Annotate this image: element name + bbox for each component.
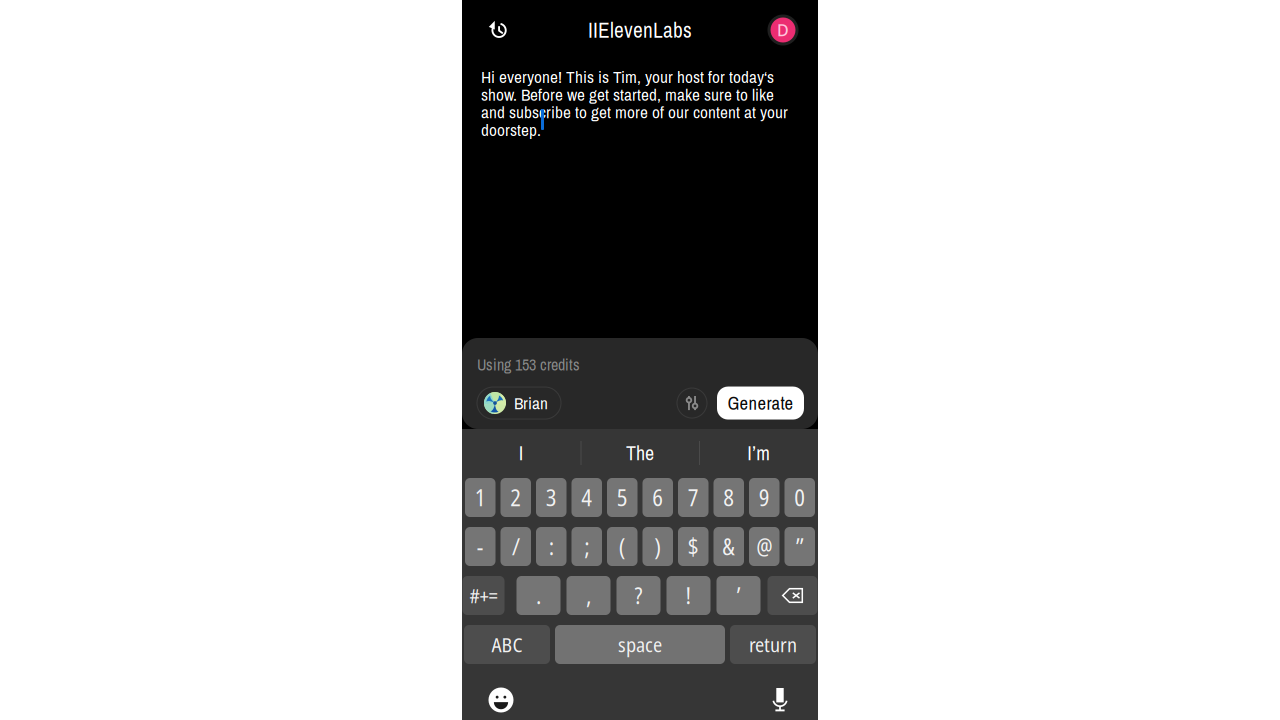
staticText: / [512, 531, 520, 562]
button[interactable]: 4 [571, 478, 602, 517]
staticText: I [519, 439, 524, 466]
button[interactable]: 8 [713, 478, 744, 517]
staticText: ! [685, 580, 691, 611]
staticText: IIElevenLabs [588, 16, 692, 44]
staticText: 2 [510, 482, 521, 513]
staticText: 4 [581, 482, 592, 513]
button[interactable]: ) [642, 527, 673, 566]
staticText: Generate [727, 390, 793, 416]
staticText: #+= [469, 582, 497, 609]
staticText: : [549, 531, 554, 562]
button[interactable]: 3 [536, 478, 566, 517]
staticText: - [477, 531, 484, 562]
button[interactable]: Account [761, 8, 805, 52]
staticText: , [586, 580, 591, 611]
button[interactable]: / [500, 527, 531, 566]
staticText: D [777, 19, 789, 41]
button[interactable]: I’m [699, 429, 818, 477]
staticText: The [626, 439, 654, 466]
staticText: Hi everyone! This is Tim, your host for … [481, 68, 788, 138]
button[interactable]: Emoji [481, 683, 521, 717]
button[interactable]: ; [571, 527, 602, 566]
button[interactable]: 6 [642, 478, 673, 517]
staticText: ( [619, 531, 626, 562]
staticText: 1 [475, 482, 486, 513]
staticText: I’m [747, 439, 770, 466]
button[interactable]: $ [678, 527, 708, 566]
staticText: space [618, 631, 662, 658]
staticText: ; [584, 531, 589, 562]
staticText: ” [796, 531, 804, 562]
button[interactable]: - [465, 527, 495, 566]
staticText: 7 [688, 482, 699, 513]
button[interactable]: Voice settings [677, 388, 707, 418]
button[interactable]: ” [784, 527, 815, 566]
staticText: ? [634, 580, 642, 611]
button[interactable]: space [555, 625, 725, 664]
button[interactable]: ! [666, 576, 710, 615]
button[interactable]: ( [607, 527, 637, 566]
button[interactable]: 7 [678, 478, 708, 517]
staticText: ’ [736, 580, 740, 611]
staticText: Using 153 credits [477, 354, 580, 376]
staticText: $ [688, 531, 699, 562]
button[interactable]: ? [616, 576, 660, 615]
button[interactable]: , [566, 576, 610, 615]
button[interactable]: 1 [465, 478, 495, 517]
button[interactable]: ABC [464, 625, 550, 664]
button[interactable]: Dictation [760, 683, 800, 717]
staticText: ABC [491, 631, 522, 658]
button[interactable]: #+= [462, 576, 504, 615]
button[interactable]: 0 [784, 478, 815, 517]
staticText: return [749, 631, 797, 658]
button[interactable]: ’ [716, 576, 760, 615]
button[interactable]: The [581, 429, 699, 477]
staticText: @ [756, 531, 772, 562]
button[interactable]: & [713, 527, 744, 566]
staticText: 8 [723, 482, 734, 513]
staticText: . [536, 580, 541, 611]
staticText: 9 [759, 482, 770, 513]
button[interactable]: @ [749, 527, 779, 566]
button[interactable]: 5 [607, 478, 637, 517]
button[interactable]: Generate [717, 387, 804, 420]
button[interactable]: Delete [767, 576, 817, 615]
button[interactable]: . [516, 576, 560, 615]
staticText: 5 [617, 482, 628, 513]
staticText: 6 [652, 482, 663, 513]
staticText: & [722, 531, 735, 562]
button[interactable]: 2 [500, 478, 531, 517]
button[interactable]: History [476, 8, 520, 52]
button[interactable]: Brian [477, 387, 561, 419]
button[interactable]: I [462, 429, 581, 477]
button[interactable]: : [536, 527, 566, 566]
button[interactable]: return [730, 625, 816, 664]
staticText: 0 [794, 482, 805, 513]
staticText: ) [654, 531, 661, 562]
staticText: Brian [514, 391, 548, 415]
staticText: 3 [546, 482, 557, 513]
button[interactable]: 9 [749, 478, 779, 517]
